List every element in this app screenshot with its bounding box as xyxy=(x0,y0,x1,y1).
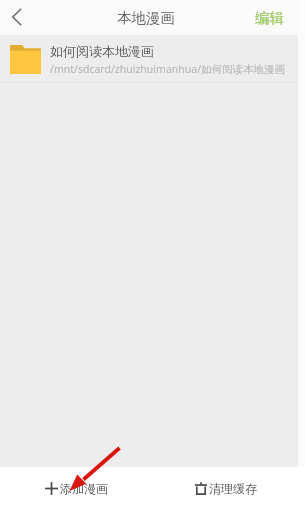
button[interactable]: 如何阅读本地漫画 xyxy=(0,35,305,82)
staticText: 如何阅读本地漫画 xyxy=(50,43,154,59)
staticText: 编辑 xyxy=(255,9,284,27)
staticText: 本地漫画 xyxy=(117,9,175,27)
button[interactable]: Back xyxy=(0,0,34,35)
staticText: 添加漫画 xyxy=(60,481,108,496)
staticText: /mnt/sdcard/zhuizhuimanhua/如何阅读本地漫画 xyxy=(50,62,286,76)
button[interactable]: 编辑 xyxy=(243,0,305,35)
button[interactable]: 清理缓存 xyxy=(149,467,302,510)
staticText: 清理缓存 xyxy=(209,481,257,496)
button[interactable]: 添加漫画 xyxy=(0,467,152,510)
